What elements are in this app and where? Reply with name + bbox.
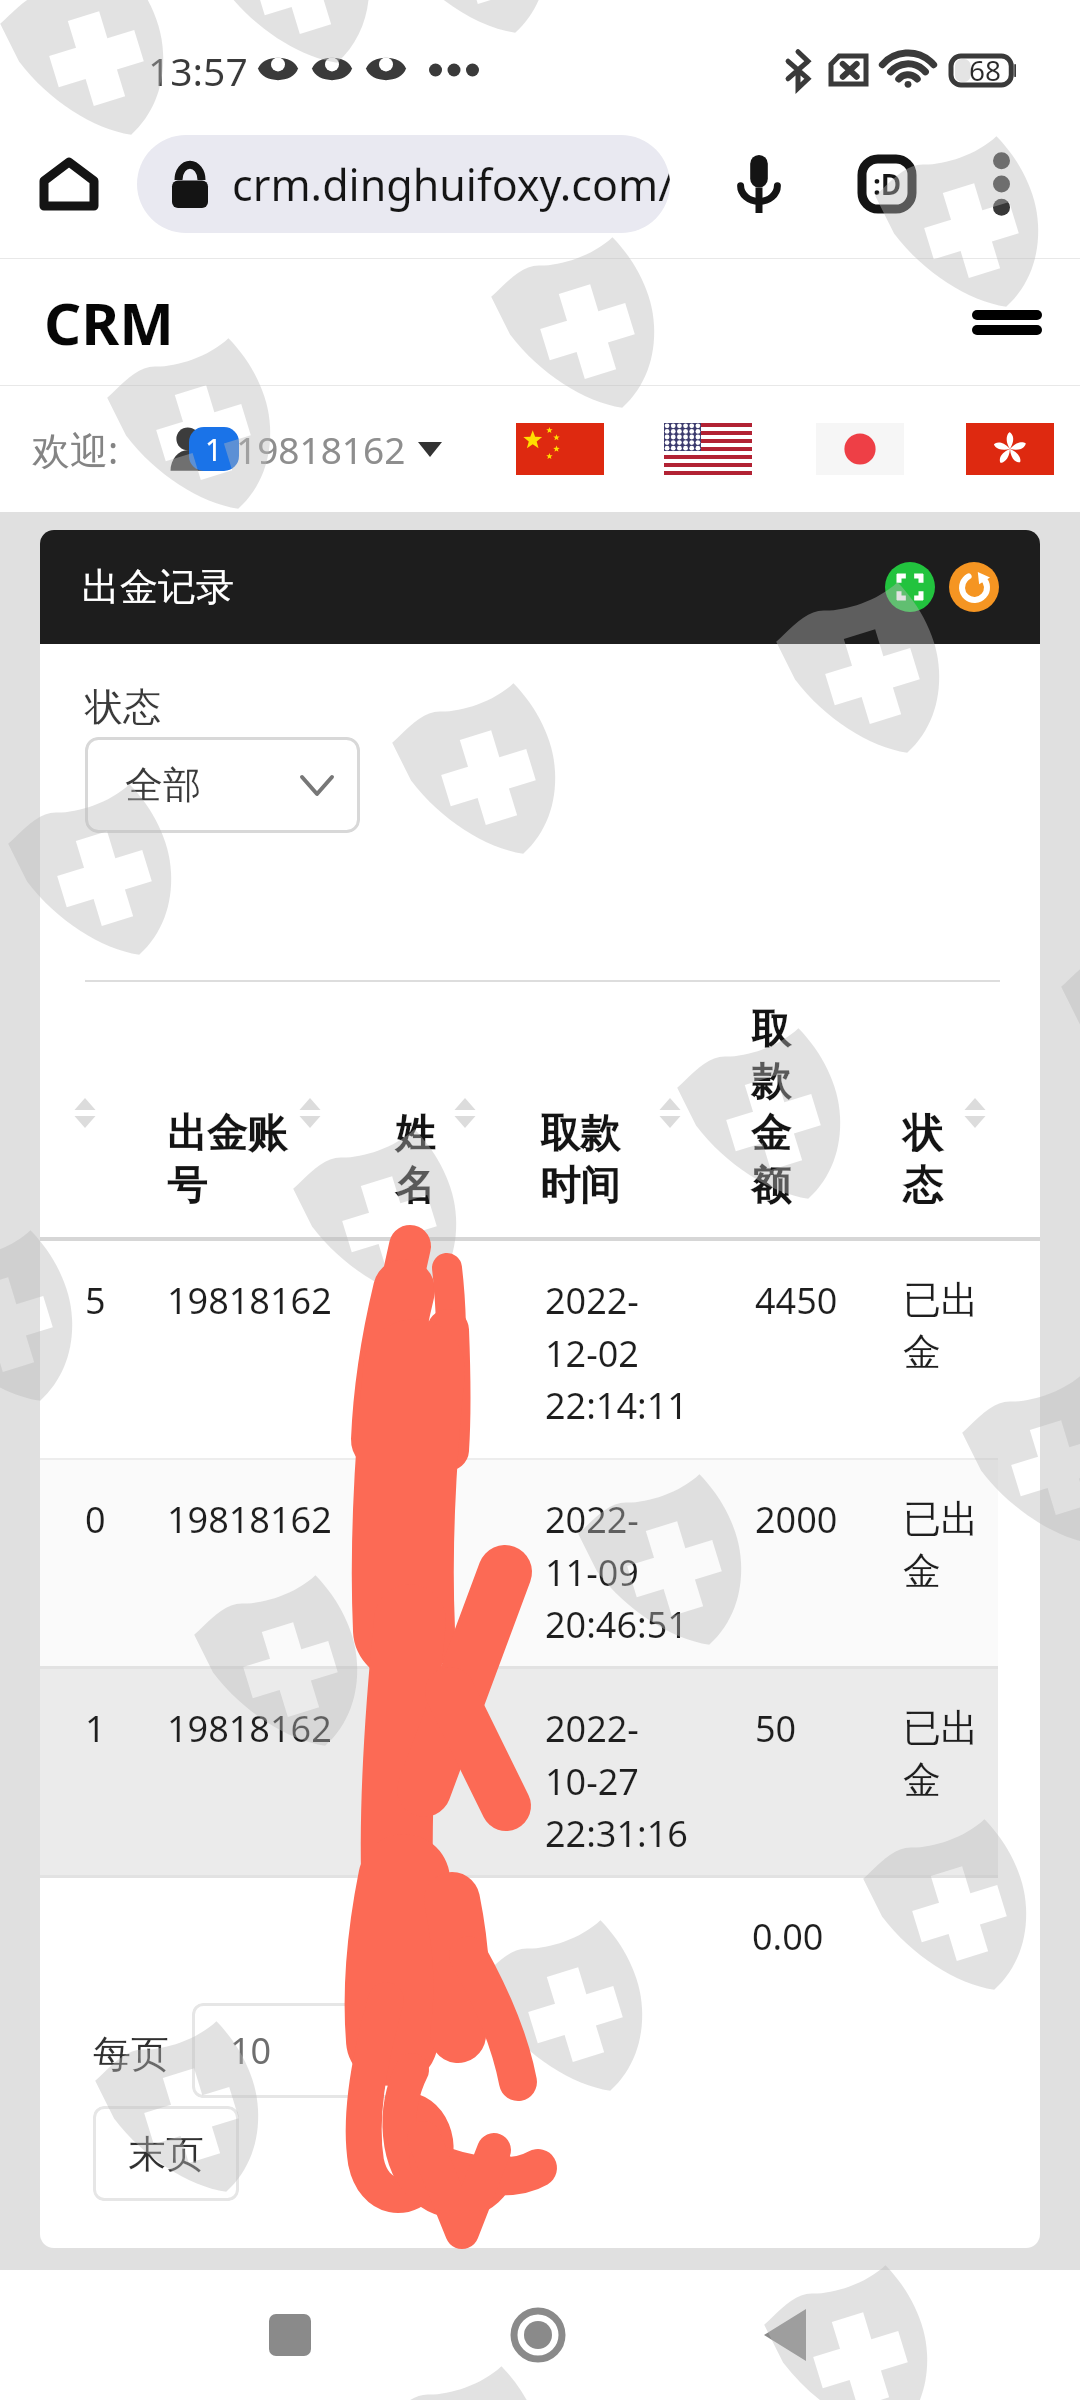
- button[interactable]: Refresh: [949, 562, 999, 612]
- staticText: 19818162: [167, 1704, 332, 1753]
- button[interactable]: crm.dinghuifoxy.com/: [137, 135, 670, 233]
- staticText: 取款 时间: [540, 1108, 620, 1211]
- staticText: 每页: [93, 2030, 169, 2078]
- staticText: 2022- 10-27 22:31:16: [545, 1704, 688, 1857]
- staticText: 2022- 11-09 20:46:51: [545, 1495, 688, 1648]
- staticText: 已出 金: [903, 1495, 979, 1595]
- staticText: 4450: [755, 1276, 838, 1325]
- staticText: 末页: [128, 2130, 204, 2178]
- button[interactable]: English: [664, 423, 752, 475]
- staticText: 50: [755, 1704, 797, 1753]
- button[interactable]: 末页: [93, 2106, 239, 2201]
- button[interactable]: Chinese: [516, 423, 604, 475]
- staticText: 全部: [125, 761, 201, 809]
- button[interactable]: 10: [192, 2003, 422, 2098]
- staticText: 出金记录: [82, 563, 234, 611]
- button[interactable]: 全部: [85, 737, 360, 833]
- staticText: 68: [969, 51, 1002, 89]
- button[interactable]: Fullscreen: [885, 562, 935, 612]
- staticText: 13:57: [148, 44, 248, 97]
- staticText: 出金账 号: [167, 1108, 287, 1211]
- button[interactable]: Tabs: [845, 142, 929, 226]
- staticText: 0.00: [752, 1912, 824, 1961]
- staticText: 1: [85, 1704, 106, 1753]
- staticText: 19818162: [167, 1276, 332, 1325]
- button[interactable]: Voice search: [717, 142, 801, 226]
- staticText: 19818162: [236, 424, 406, 474]
- button[interactable]: Recent apps: [200, 2270, 380, 2400]
- staticText: :D: [873, 165, 902, 203]
- button[interactable]: Back: [695, 2270, 875, 2400]
- button[interactable]: 1: [168, 386, 442, 512]
- staticText: 状 态: [903, 1108, 943, 1211]
- staticText: 取 款 金 额: [751, 1004, 791, 1211]
- button[interactable]: Menu: [962, 277, 1052, 367]
- staticText: 10: [230, 2026, 272, 2075]
- staticText: CRM: [44, 283, 174, 362]
- button[interactable]: Japanese: [816, 423, 904, 475]
- staticText: 1: [205, 429, 223, 470]
- staticText: 姓 名: [395, 1108, 435, 1211]
- staticText: 欢迎:: [32, 423, 119, 475]
- button[interactable]: Home: [448, 2270, 628, 2400]
- staticText: 已出 金: [903, 1704, 979, 1804]
- staticText: crm.dinghuifoxy.com/: [232, 155, 670, 214]
- staticText: 19818162: [167, 1495, 332, 1544]
- button[interactable]: Cantonese: [966, 423, 1054, 475]
- staticText: 2000: [755, 1495, 838, 1544]
- staticText: 0: [85, 1495, 106, 1544]
- staticText: 已出 金: [903, 1276, 979, 1376]
- staticText: 状态: [85, 683, 161, 731]
- staticText: 2022- 12-02 22:14:11: [545, 1276, 688, 1429]
- button[interactable]: More options: [971, 154, 1031, 214]
- button[interactable]: Home: [34, 149, 104, 219]
- staticText: 5: [85, 1276, 106, 1325]
